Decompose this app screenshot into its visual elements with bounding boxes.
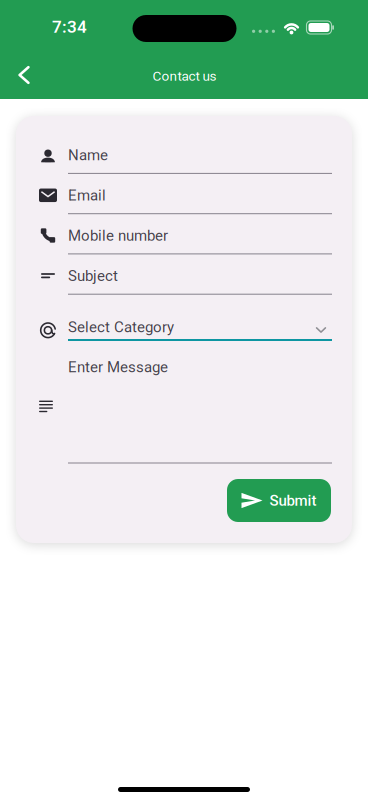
staticText: Select Category — [68, 318, 174, 336]
button[interactable]: Name — [36, 136, 340, 174]
button[interactable]: Email — [36, 176, 340, 214]
staticText: Contact us — [152, 68, 216, 84]
staticText: Mobile number — [68, 227, 168, 244]
staticText: Submit — [269, 492, 316, 509]
staticText: Email — [68, 186, 106, 204]
button[interactable]: Back — [4, 55, 44, 95]
button[interactable]: Submit — [227, 479, 331, 522]
button[interactable]: Mobile number — [36, 216, 340, 254]
button[interactable]: Enter Message — [36, 345, 340, 475]
button[interactable]: Subject — [36, 257, 340, 295]
staticText: Enter Message — [68, 358, 168, 376]
staticText: 7:34 — [52, 17, 87, 37]
button[interactable]: Select Category — [36, 309, 340, 347]
staticText: Subject — [68, 267, 118, 285]
staticText: Name — [68, 146, 108, 164]
